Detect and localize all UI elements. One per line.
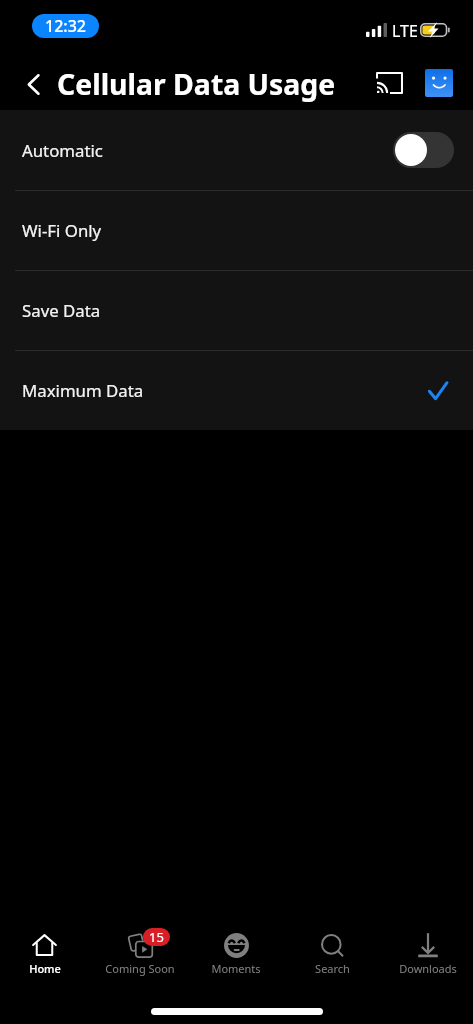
- button[interactable]: Moments: [188, 929, 284, 991]
- button[interactable]: Profile: [425, 69, 453, 97]
- button[interactable]: Downloads: [380, 929, 473, 991]
- staticText: Downloads: [399, 961, 457, 976]
- staticText: Cellular Data Usage: [57, 65, 336, 104]
- button[interactable]: Back: [15, 66, 51, 102]
- staticText: Search: [315, 961, 350, 976]
- staticText: Automatic: [22, 139, 103, 162]
- button[interactable]: Wi-Fi Only: [0, 190, 473, 270]
- button[interactable]: Maximum Data: [0, 350, 473, 430]
- staticText: 12:32: [45, 15, 86, 37]
- staticText: Coming Soon: [105, 961, 175, 976]
- button[interactable]: Search: [284, 929, 380, 991]
- staticText: Save Data: [22, 299, 101, 322]
- button[interactable]: Home: [0, 929, 92, 991]
- button[interactable]: Cast: [370, 64, 408, 102]
- staticText: LTE: [392, 20, 418, 42]
- staticText: Wi-Fi Only: [22, 219, 102, 242]
- staticText: 15: [149, 928, 164, 946]
- staticText: Maximum Data: [22, 379, 144, 402]
- button[interactable]: Save Data: [0, 270, 473, 350]
- button[interactable]: 15: [92, 929, 188, 991]
- staticText: Home: [29, 961, 61, 976]
- staticText: Moments: [211, 961, 261, 976]
- button[interactable]: Automatic toggle: [393, 132, 454, 168]
- button[interactable]: Automatic: [0, 110, 473, 190]
